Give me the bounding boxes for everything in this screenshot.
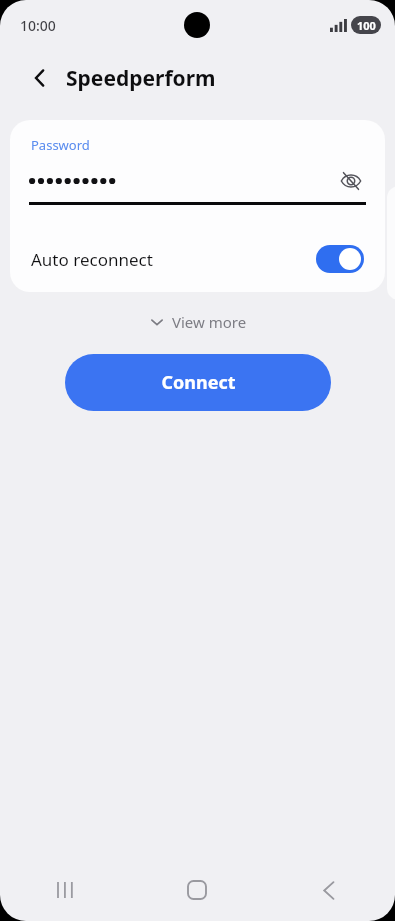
button[interactable]: Connect	[65, 354, 331, 411]
button[interactable]: Auto reconnect	[10, 237, 385, 281]
staticText: View more	[172, 312, 247, 332]
staticText: Speedperform	[66, 64, 216, 93]
staticText: 100	[357, 18, 376, 33]
button[interactable]: Back	[263, 859, 395, 921]
staticText: Connect	[161, 370, 236, 395]
staticText: 10:00	[20, 16, 56, 35]
staticText: Password	[31, 136, 90, 154]
button[interactable]: Show password	[29, 166, 366, 196]
staticText: Auto reconnect	[31, 248, 153, 271]
button[interactable]: Recent apps	[0, 859, 131, 921]
button[interactable]: Home	[131, 859, 263, 921]
button[interactable]: Show password	[336, 166, 366, 196]
button[interactable]: Back	[20, 58, 60, 98]
button[interactable]: View more	[141, 308, 255, 336]
button[interactable]: Auto reconnect toggle	[316, 245, 364, 273]
